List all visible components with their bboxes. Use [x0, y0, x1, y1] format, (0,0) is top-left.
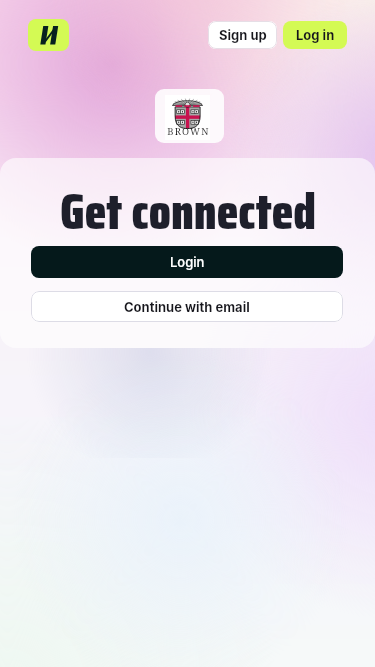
- button[interactable]: Log in: [283, 21, 347, 49]
- staticText: BROWN: [167, 125, 210, 138]
- staticText: Log in: [296, 27, 335, 43]
- button[interactable]: Sign up: [208, 21, 277, 49]
- staticText: Continue with email: [124, 299, 250, 315]
- staticText: Sign up: [219, 27, 267, 43]
- button[interactable]: Handshake home: [28, 19, 69, 51]
- button[interactable]: Brown University: [155, 89, 224, 143]
- button[interactable]: Login: [31, 246, 343, 278]
- staticText: Get connected: [60, 172, 316, 251]
- button[interactable]: Continue with email: [31, 291, 343, 322]
- staticText: Login: [170, 254, 205, 270]
